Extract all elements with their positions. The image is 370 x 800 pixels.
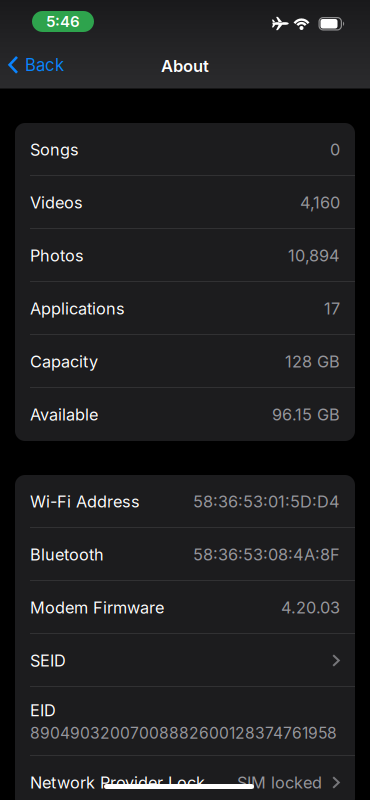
- staticText: 5:46: [46, 13, 80, 30]
- staticText: 58:36:53:01:5D:D4: [193, 492, 340, 511]
- staticText: 58:36:53:08:4A:8F: [193, 545, 340, 564]
- button[interactable]: Return to call: [32, 11, 94, 32]
- staticText: Applications: [30, 299, 125, 318]
- staticText: 4,160: [300, 193, 340, 212]
- staticText: Network Provider Lock: [30, 773, 205, 792]
- staticText: SEID: [30, 651, 66, 670]
- staticText: Videos: [30, 193, 83, 212]
- staticText: EID: [30, 701, 56, 720]
- staticText: 128 GB: [285, 352, 340, 371]
- staticText: 96.15 GB: [272, 405, 340, 424]
- staticText: SIM locked: [237, 773, 322, 792]
- staticText: 10,894: [288, 246, 340, 265]
- button[interactable]: SEID: [15, 634, 355, 687]
- staticText: Bluetooth: [30, 545, 104, 564]
- staticText: Capacity: [30, 352, 98, 371]
- staticText: 89049032007008882600128374761958: [30, 724, 337, 742]
- staticText: 0: [330, 140, 340, 159]
- staticText: Songs: [30, 140, 79, 159]
- staticText: Modem Firmware: [30, 598, 164, 617]
- button[interactable]: Network Provider Lock: [15, 756, 355, 800]
- staticText: Photos: [30, 246, 84, 265]
- staticText: About: [161, 56, 209, 76]
- staticText: Wi-Fi Address: [30, 492, 140, 511]
- staticText: 4.20.03: [281, 598, 340, 617]
- staticText: 17: [324, 299, 340, 318]
- staticText: Back: [25, 55, 64, 75]
- staticText: Available: [30, 405, 98, 424]
- button[interactable]: Back: [8, 55, 64, 75]
